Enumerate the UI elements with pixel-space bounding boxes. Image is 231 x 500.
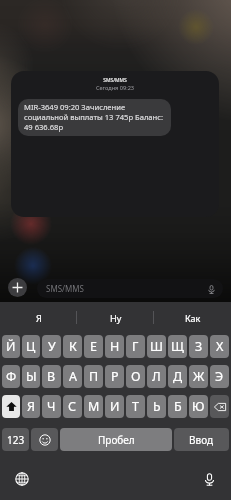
staticText: Ж [193, 368, 205, 385]
button[interactable]: У [42, 335, 61, 358]
staticText: Е [90, 338, 97, 355]
staticText: А [69, 368, 77, 385]
staticText: М [88, 398, 100, 415]
staticText: Пробел [98, 433, 135, 447]
button[interactable]: Ф [2, 365, 20, 388]
staticText: Й [6, 338, 16, 355]
staticText: Ы [26, 368, 37, 385]
staticText: П [89, 368, 99, 385]
button[interactable]: Л [147, 365, 166, 388]
button[interactable]: П [84, 365, 103, 388]
staticText: Д [173, 368, 183, 385]
button[interactable]: Х [210, 335, 229, 358]
staticText: О [131, 368, 141, 385]
staticText: Ч [47, 398, 56, 415]
button[interactable]: Р [105, 365, 124, 388]
button[interactable]: Voice typing [198, 468, 220, 490]
staticText: Я [36, 312, 42, 324]
button[interactable]: С [63, 395, 82, 418]
button[interactable]: А [63, 365, 82, 388]
staticText: Сегодня 09:23 [11, 84, 219, 92]
staticText: 123 [7, 433, 25, 447]
button[interactable]: Change language [11, 468, 33, 490]
button[interactable]: И [105, 395, 124, 418]
staticText: Р [111, 368, 119, 385]
button[interactable] [2, 395, 20, 418]
button[interactable]: Д [168, 365, 187, 388]
staticText: Л [152, 368, 161, 385]
staticText: Ввод [189, 433, 214, 447]
button[interactable]: Voice input [203, 281, 219, 297]
staticText: К [69, 338, 77, 355]
button[interactable]: Н [105, 335, 124, 358]
button[interactable]: В [42, 365, 61, 388]
button[interactable]: Ю [189, 395, 208, 418]
staticText: Ну [110, 312, 122, 324]
button[interactable]: Г [126, 335, 145, 358]
button[interactable]: Ь [147, 395, 166, 418]
staticText: Н [110, 338, 120, 355]
staticText: Ц [26, 338, 36, 355]
staticText: Как [185, 312, 201, 324]
button[interactable]: Add attachment [8, 278, 27, 297]
staticText: Ю [192, 398, 205, 415]
staticText: Б [174, 398, 182, 415]
staticText: SMS/MMS [46, 283, 84, 294]
staticText: Г [132, 338, 139, 355]
staticText: В [47, 368, 56, 385]
staticText: MIR-3649 09:20 Зачисление социальной вып… [24, 102, 164, 132]
staticText: У [48, 338, 56, 355]
button[interactable]: О [126, 365, 145, 388]
staticText: Х [216, 338, 224, 355]
button[interactable]: З [189, 335, 208, 358]
staticText: Ь [153, 398, 161, 415]
staticText: Щ [171, 338, 184, 355]
button[interactable]: Е [84, 335, 103, 358]
button[interactable]: Ш [147, 335, 166, 358]
button[interactable]: Ц [22, 335, 40, 358]
button[interactable]: Щ [168, 335, 187, 358]
button[interactable]: Э [210, 365, 229, 388]
staticText: SMS/MMS [11, 77, 219, 84]
button[interactable]: Т [126, 395, 145, 418]
button[interactable]: Я [0, 302, 77, 333]
button[interactable] [210, 395, 229, 418]
staticText: И [110, 398, 120, 415]
button[interactable]: SMS/MMS [37, 279, 223, 298]
staticText: Т [132, 398, 139, 415]
button[interactable]: Б [168, 395, 187, 418]
staticText: З [195, 338, 203, 355]
button[interactable] [31, 428, 58, 451]
button[interactable]: М [84, 395, 103, 418]
button[interactable]: Ы [22, 365, 40, 388]
button[interactable]: 123 [2, 428, 29, 451]
staticText: С [68, 398, 77, 415]
button[interactable]: Й [2, 335, 20, 358]
staticText: Я [27, 398, 35, 415]
staticText: Ш [150, 338, 163, 355]
button[interactable]: Ч [42, 395, 61, 418]
button[interactable]: SMS/MMS [11, 71, 219, 217]
button[interactable]: К [63, 335, 82, 358]
button[interactable]: Как [154, 302, 231, 333]
button[interactable]: Я [22, 395, 40, 418]
button[interactable]: Ну [77, 302, 154, 333]
staticText: Ф [6, 368, 17, 385]
button[interactable]: Ввод [174, 428, 229, 451]
button[interactable]: Пробел [60, 428, 172, 451]
button[interactable]: Ж [189, 365, 208, 388]
staticText: Э [215, 368, 224, 385]
